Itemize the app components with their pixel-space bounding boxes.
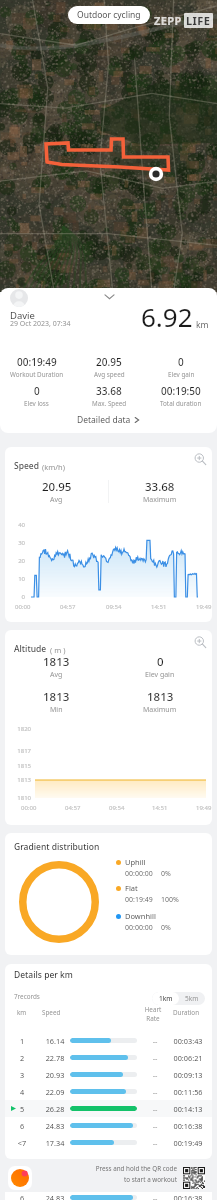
staticText: 00:00:00 bbox=[125, 869, 153, 879]
staticText: 30 bbox=[11, 539, 25, 547]
button[interactable]: 5 bbox=[5, 1100, 212, 1117]
staticText: 20.95 bbox=[42, 479, 72, 495]
staticText: 00:19:49 bbox=[169, 1138, 207, 1148]
staticText: Flat bbox=[125, 883, 138, 893]
staticText: 6 bbox=[15, 1193, 29, 1200]
staticText: 22.09 bbox=[41, 1087, 69, 1097]
staticText: 0% bbox=[161, 869, 171, 879]
staticText: 0 bbox=[11, 593, 25, 601]
button[interactable]: Profile avatar bbox=[10, 289, 28, 307]
staticText: 100% bbox=[161, 895, 179, 905]
staticText: -- bbox=[144, 1070, 166, 1080]
staticText: 00:16:38 bbox=[169, 1193, 207, 1200]
staticText: 04:57 bbox=[60, 603, 76, 611]
staticText: 4 bbox=[15, 1087, 29, 1097]
button[interactable]: Zoom in bbox=[191, 450, 209, 468]
staticText: Davie bbox=[10, 309, 35, 322]
staticText: 1815 bbox=[9, 762, 31, 770]
staticText: ZEPP bbox=[154, 13, 182, 28]
staticText: -- bbox=[144, 1193, 166, 1200]
staticText: 7records bbox=[14, 992, 40, 1001]
staticText: 29 Oct 2023, 07:34 bbox=[10, 319, 71, 329]
staticText: 19:49 bbox=[196, 603, 212, 611]
staticText: 00:06:21 bbox=[169, 1053, 207, 1063]
staticText: Avg bbox=[50, 495, 63, 505]
staticText: 40 bbox=[11, 521, 25, 529]
staticText: Gradient distribution bbox=[14, 841, 100, 853]
button[interactable]: 4 bbox=[5, 1083, 212, 1100]
staticText: 0 bbox=[34, 384, 40, 398]
staticText: Maximum bbox=[143, 495, 177, 505]
staticText: Heart Rate bbox=[141, 1005, 165, 1023]
staticText: 6 bbox=[15, 1121, 29, 1131]
staticText: Press and hold the QR code bbox=[95, 1164, 177, 1173]
staticText: 5 bbox=[15, 1104, 29, 1114]
staticText: Elev loss bbox=[24, 399, 49, 408]
staticText: 0% bbox=[161, 923, 171, 933]
staticText: 5km bbox=[185, 994, 199, 1003]
staticText: 26.28 bbox=[41, 1104, 69, 1114]
staticText: 0 bbox=[157, 654, 164, 670]
button[interactable]: Detailed data bbox=[0, 414, 217, 426]
button[interactable]: Zoom in bbox=[191, 633, 209, 651]
staticText: to start a workout bbox=[95, 1175, 177, 1184]
staticText: 00:00 bbox=[21, 804, 37, 812]
staticText: 10 bbox=[11, 575, 25, 583]
button[interactable]: Outdoor cycling bbox=[68, 6, 150, 24]
staticText: 00:19:50 bbox=[161, 384, 201, 398]
staticText: Uphill bbox=[125, 857, 146, 867]
staticText: 16.14 bbox=[41, 1036, 69, 1046]
staticText: 00:09:13 bbox=[169, 1070, 207, 1080]
staticText: 1813 bbox=[43, 654, 70, 670]
staticText: Outdoor cycling bbox=[77, 9, 141, 21]
button[interactable]: <7 bbox=[5, 1134, 212, 1151]
staticText: 17.34 bbox=[41, 1138, 69, 1148]
staticText: 24.83 bbox=[41, 1121, 69, 1131]
button[interactable]: 6 bbox=[5, 1117, 212, 1134]
staticText: 1810 bbox=[9, 794, 31, 802]
button[interactable]: QR code bbox=[183, 1167, 205, 1189]
button[interactable]: Collapse bbox=[103, 290, 116, 303]
staticText: 09:54 bbox=[106, 603, 122, 611]
staticText: Maximum bbox=[143, 705, 177, 715]
staticText: 33.68 bbox=[145, 479, 175, 495]
staticText: 1 bbox=[15, 1036, 29, 1046]
staticText: 20 bbox=[11, 557, 25, 565]
button[interactable]: 3 bbox=[5, 1066, 212, 1083]
staticText: (km/h) bbox=[42, 462, 65, 472]
button[interactable]: 1km bbox=[152, 992, 179, 1005]
staticText: 0 bbox=[178, 355, 184, 369]
staticText: 1813 bbox=[43, 689, 70, 705]
staticText: 20.93 bbox=[41, 1070, 69, 1080]
staticText: Elev gain bbox=[145, 670, 175, 680]
staticText: 2 bbox=[15, 1053, 29, 1063]
staticText: Detailed data bbox=[77, 414, 131, 426]
staticText: 09:54 bbox=[109, 804, 125, 812]
button[interactable]: 5km bbox=[179, 992, 205, 1005]
staticText: 00:03:43 bbox=[169, 1036, 207, 1046]
staticText: -- bbox=[144, 1138, 166, 1148]
staticText: Min bbox=[50, 705, 63, 715]
staticText: km bbox=[17, 1008, 27, 1017]
staticText: -- bbox=[144, 1121, 166, 1131]
staticText: 00:19:49 bbox=[125, 895, 153, 905]
staticText: Avg speed bbox=[94, 370, 125, 379]
staticText: ( m ) bbox=[50, 645, 66, 655]
staticText: -- bbox=[144, 1036, 166, 1046]
staticText: 20.95 bbox=[96, 355, 122, 369]
staticText: 00:19:49 bbox=[17, 355, 57, 369]
staticText: Max. Speed bbox=[92, 399, 127, 408]
staticText: 33.68 bbox=[96, 384, 122, 398]
button[interactable]: 2 bbox=[5, 1049, 212, 1066]
button[interactable]: 1 bbox=[5, 1032, 212, 1049]
staticText: 1813 bbox=[147, 689, 174, 705]
staticText: 1813 bbox=[9, 776, 31, 784]
staticText: Downhill bbox=[125, 911, 156, 921]
staticText: 24.83 bbox=[41, 1193, 69, 1200]
staticText: 00:11:56 bbox=[169, 1087, 207, 1097]
staticText: 19:49 bbox=[196, 804, 212, 812]
staticText: Altitude bbox=[14, 643, 47, 655]
button[interactable]: Zepp Life app bbox=[8, 1166, 32, 1190]
staticText: -- bbox=[144, 1053, 166, 1063]
staticText: Workout Duration bbox=[10, 370, 64, 379]
